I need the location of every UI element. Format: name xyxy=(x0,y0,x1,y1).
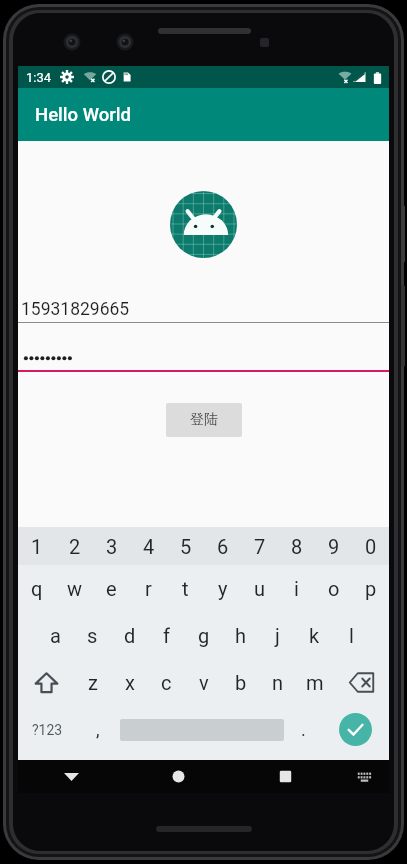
button[interactable]: Backspace xyxy=(333,659,389,706)
button[interactable]: e xyxy=(93,565,130,612)
button[interactable]: a xyxy=(37,612,74,659)
button[interactable]: i xyxy=(278,565,315,612)
button[interactable]: f xyxy=(148,612,185,659)
button[interactable]: 4 xyxy=(130,527,167,565)
button[interactable]: n xyxy=(259,659,296,706)
staticText: 9 xyxy=(328,535,340,558)
staticText: ?123 xyxy=(32,722,63,738)
staticText: e xyxy=(106,577,117,600)
staticText: 1:34 xyxy=(26,70,52,85)
staticText: 4 xyxy=(143,535,155,558)
button[interactable]: Recent apps xyxy=(232,760,339,793)
button[interactable]: j xyxy=(259,612,296,659)
button[interactable]: x xyxy=(111,659,148,706)
staticText: 3 xyxy=(106,535,118,558)
staticText: 6 xyxy=(217,535,229,558)
staticText: p xyxy=(365,577,377,600)
staticText: a xyxy=(50,624,61,647)
staticText: t xyxy=(182,577,189,600)
staticText: 1 xyxy=(31,535,43,558)
button[interactable]: q xyxy=(18,565,56,612)
button[interactable]: k xyxy=(296,612,333,659)
staticText: 8 xyxy=(291,535,303,558)
staticText: c xyxy=(161,671,172,694)
staticText: u xyxy=(254,577,266,600)
staticText: j xyxy=(275,624,280,647)
staticText: 0 xyxy=(365,535,377,558)
button[interactable]: r xyxy=(130,565,167,612)
button[interactable]: v xyxy=(185,659,222,706)
button[interactable]: Change keyboard xyxy=(339,760,389,793)
staticText: n xyxy=(272,671,284,694)
button[interactable]: 0 xyxy=(352,527,389,565)
button[interactable]: Shift xyxy=(18,659,74,706)
button[interactable]: z xyxy=(74,659,111,706)
button[interactable]: b xyxy=(222,659,259,706)
staticText: 2 xyxy=(69,535,81,558)
button[interactable]: y xyxy=(204,565,241,612)
staticText: 5 xyxy=(180,535,192,558)
staticText: x xyxy=(125,671,135,694)
button[interactable]: 登陆 xyxy=(166,403,242,437)
button[interactable]: 1 xyxy=(18,527,56,565)
staticText: d xyxy=(124,624,136,647)
button[interactable]: w xyxy=(56,565,93,612)
button[interactable]: 9 xyxy=(315,527,352,565)
button[interactable]: 8 xyxy=(278,527,315,565)
staticText: h xyxy=(235,624,247,647)
button[interactable]: 3 xyxy=(93,527,130,565)
staticText: , xyxy=(96,719,100,740)
staticText: g xyxy=(198,624,210,647)
staticText: b xyxy=(235,671,247,694)
staticText: 15931829665 xyxy=(21,299,130,320)
button[interactable]: p xyxy=(352,565,389,612)
staticText: 登陆 xyxy=(190,411,218,429)
button[interactable]: Enter xyxy=(339,713,372,746)
staticText: f xyxy=(163,624,170,647)
staticText: w xyxy=(67,577,83,600)
button[interactable]: 2 xyxy=(56,527,93,565)
staticText: . xyxy=(301,719,306,740)
button[interactable]: m xyxy=(296,659,333,706)
button[interactable]: . xyxy=(284,706,322,753)
staticText: m xyxy=(306,671,324,694)
button[interactable]: Back xyxy=(18,760,125,793)
button[interactable]: h xyxy=(222,612,259,659)
staticText: z xyxy=(88,671,98,694)
staticText: v xyxy=(199,671,209,694)
button[interactable]: u xyxy=(241,565,278,612)
staticText: i xyxy=(294,577,299,600)
staticText: 7 xyxy=(254,535,266,558)
button[interactable]: Home xyxy=(125,760,232,793)
button[interactable]: c xyxy=(148,659,185,706)
button[interactable]: l xyxy=(333,612,370,659)
button[interactable]: o xyxy=(315,565,352,612)
staticText: r xyxy=(145,577,152,600)
button[interactable]: ?123 xyxy=(18,706,76,753)
button[interactable]: s xyxy=(74,612,111,659)
staticText: k xyxy=(309,624,320,647)
staticText: q xyxy=(31,577,43,600)
staticText: Hello World xyxy=(35,104,131,126)
button[interactable]: d xyxy=(111,612,148,659)
button[interactable]: g xyxy=(185,612,222,659)
staticText: s xyxy=(87,624,98,647)
button[interactable]: 5 xyxy=(167,527,204,565)
staticText: o xyxy=(328,577,340,600)
button[interactable]: 6 xyxy=(204,527,241,565)
button[interactable]: 7 xyxy=(241,527,278,565)
button[interactable]: t xyxy=(167,565,204,612)
staticText: y xyxy=(218,577,228,600)
button[interactable]: , xyxy=(76,706,120,753)
staticText: l xyxy=(349,624,354,647)
